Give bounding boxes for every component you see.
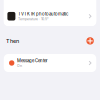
staticText: TVTK IR photoautomatic [18,11,68,17]
staticText: On [17,64,22,68]
button[interactable]: Message Center [4,54,96,72]
button[interactable]: TVTK IR photoautomatic [4,6,96,26]
staticText: Then [6,38,19,44]
button[interactable]: Add action [85,36,95,46]
staticText: Temperature · 10.5° [18,17,49,21]
staticText: Message Center [17,58,48,63]
